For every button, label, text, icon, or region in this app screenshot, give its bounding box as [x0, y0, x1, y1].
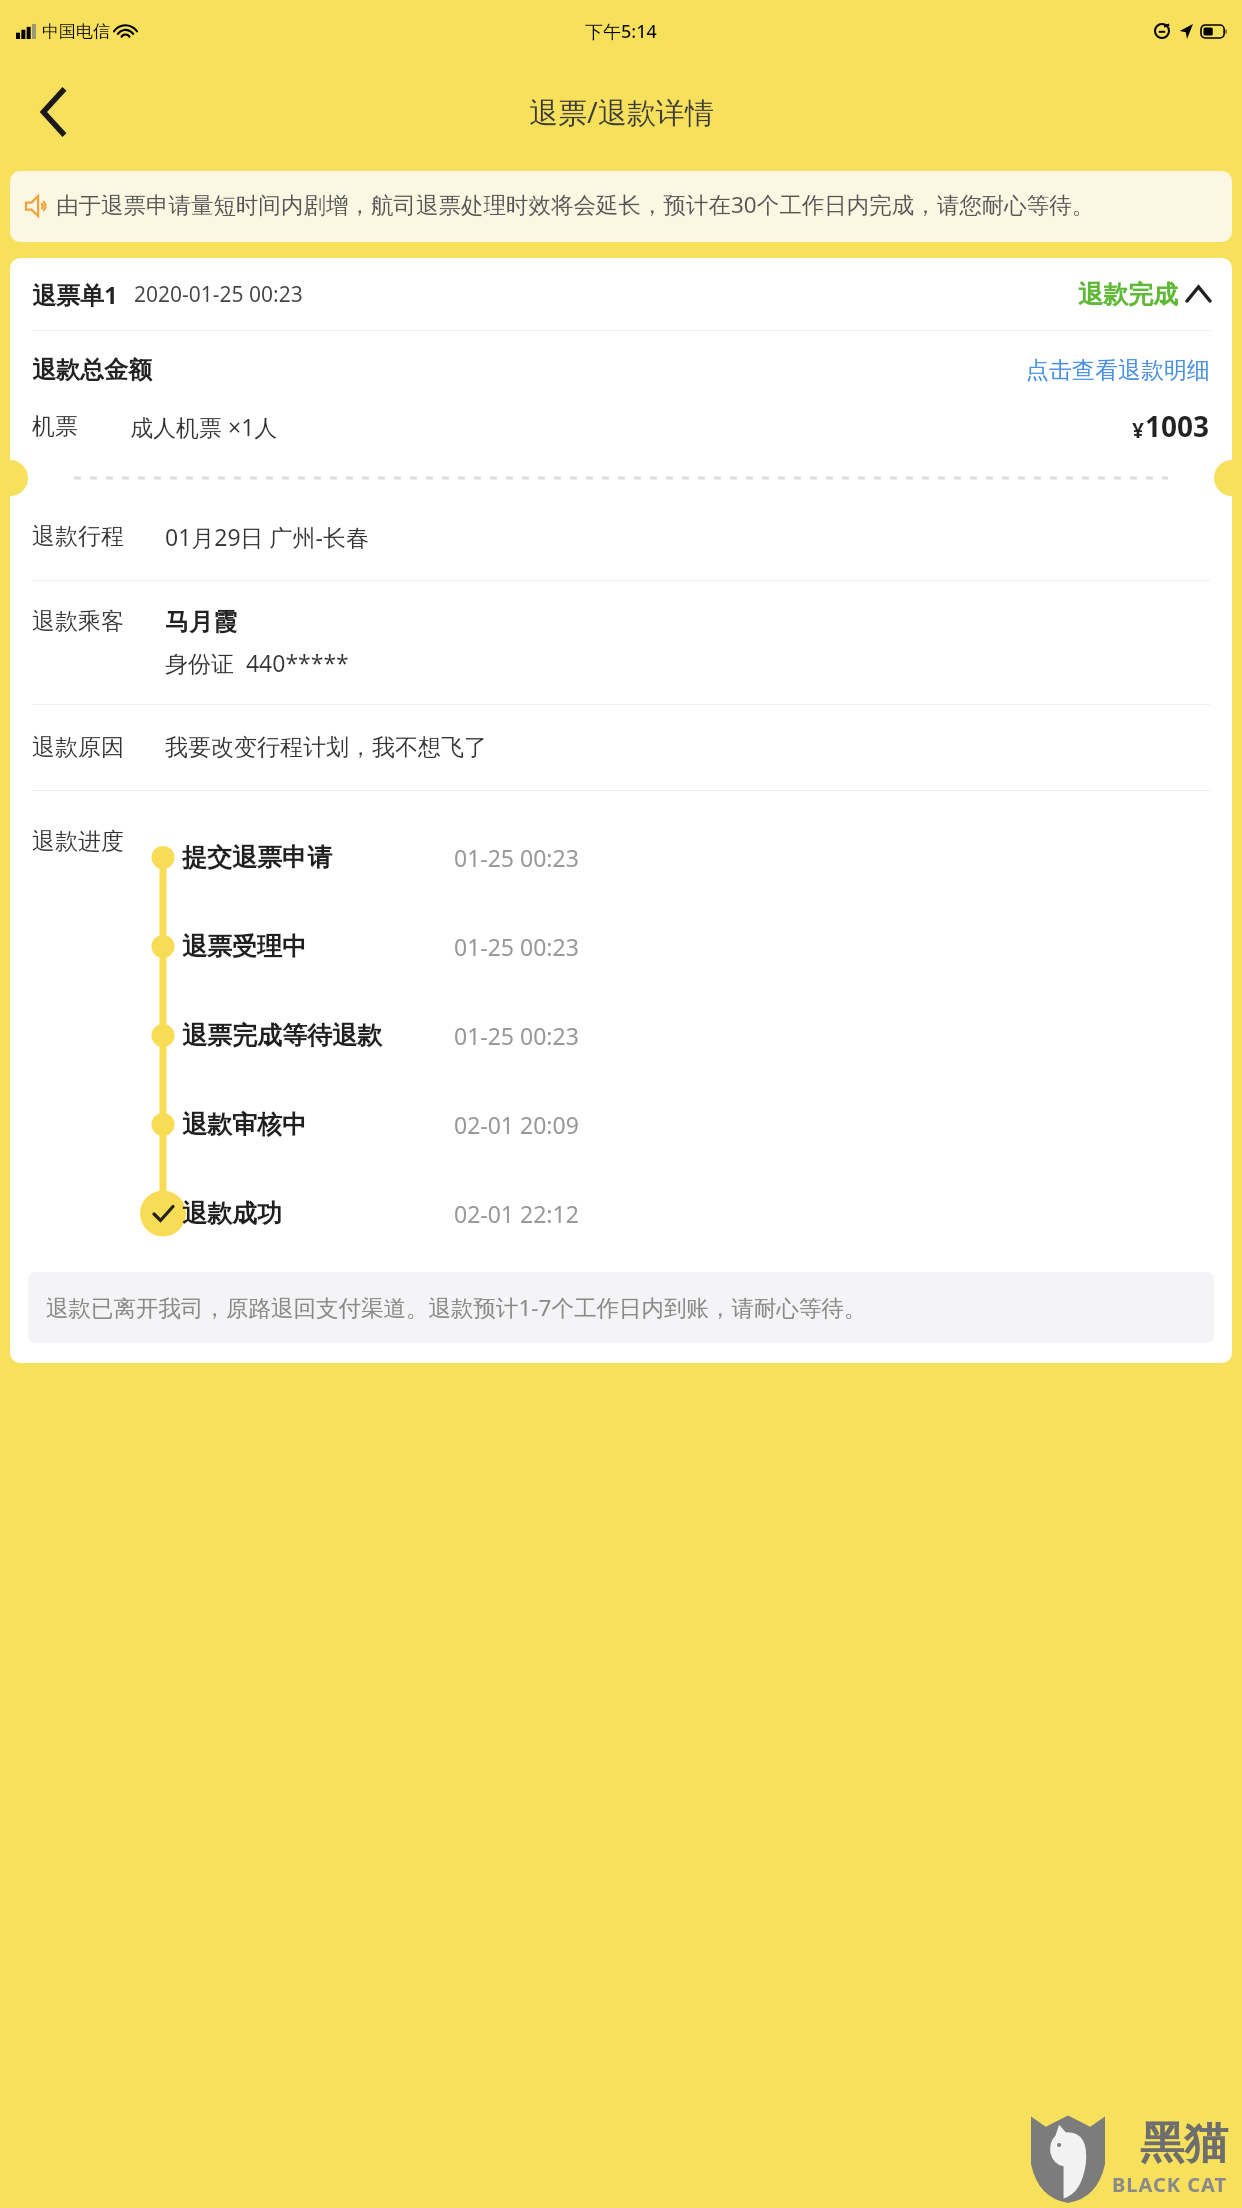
- staticText: 01-25 00:23: [454, 931, 579, 962]
- staticText: 马月霞: [165, 607, 237, 637]
- staticText: ¥: [1132, 416, 1145, 445]
- staticText: BLACK CAT: [1112, 2171, 1228, 2198]
- staticText: 退票/退款详情: [529, 92, 714, 132]
- staticText: 我要改变行程计划，我不想飞了: [165, 733, 487, 762]
- staticText: 退票受理中: [182, 931, 454, 962]
- staticText: 中国电信: [42, 21, 110, 42]
- button[interactable]: 退票单1: [10, 258, 1232, 330]
- staticText: 机票: [32, 412, 78, 441]
- staticText: 01-25 00:23: [454, 1020, 579, 1051]
- staticText: 2020-01-25 00:23: [134, 280, 303, 309]
- staticText: 点击查看退款明细: [1026, 356, 1210, 385]
- staticText: 退款已离开我司，原路退回支付渠道。退款预计1-7个工作日内到账，请耐心等待。: [46, 1292, 867, 1323]
- staticText: 02-01 20:09: [454, 1109, 579, 1140]
- staticText: 退款审核中: [182, 1109, 454, 1140]
- staticText: 退款乘客: [32, 607, 165, 636]
- staticText: 1003: [1145, 407, 1210, 445]
- staticText: 退款完成: [1078, 279, 1178, 310]
- staticText: 身份证 440*****: [165, 647, 349, 678]
- staticText: 01月29日 广州-长春: [165, 521, 370, 552]
- staticText: 退款成功: [182, 1198, 454, 1229]
- staticText: 01-25 00:23: [454, 842, 579, 873]
- staticText: 黑猫: [1140, 2116, 1228, 2171]
- staticText: 下午5:14: [585, 19, 657, 44]
- button[interactable]: 点击查看退款明细: [1026, 356, 1210, 385]
- staticText: 02-01 22:12: [454, 1198, 579, 1229]
- staticText: 由于退票申请量短时间内剧增，航司退票处理时效将会延长，预计在30个工作日内完成，…: [56, 189, 1095, 220]
- staticText: 退款行程: [32, 522, 165, 551]
- staticText: 退票完成等待退款: [182, 1020, 454, 1051]
- staticText: 退款进度: [32, 827, 149, 856]
- staticText: 退票单1: [32, 278, 118, 311]
- button[interactable]: Back: [22, 81, 84, 143]
- staticText: 退款总金额: [32, 355, 152, 385]
- staticText: 成人机票 ×1人: [130, 411, 278, 442]
- staticText: 提交退票申请: [182, 842, 454, 873]
- staticText: 退款原因: [32, 733, 165, 762]
